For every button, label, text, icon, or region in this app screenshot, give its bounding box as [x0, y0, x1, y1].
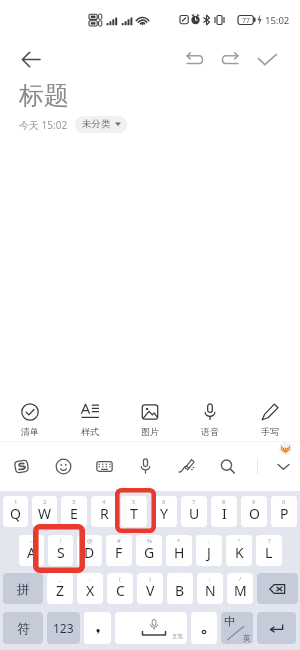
- staticText: E: [70, 504, 78, 523]
- staticText: 2: [43, 498, 47, 506]
- button[interactable]: Back: [14, 42, 48, 76]
- staticText: %: [147, 537, 152, 545]
- staticText: K: [235, 543, 244, 562]
- button[interactable]: 9: [241, 496, 267, 527]
- staticText: (: [119, 575, 121, 583]
- button[interactable]: 拼: [3, 573, 43, 604]
- staticText: 五笔: [172, 633, 183, 640]
- staticText: Y: [160, 504, 168, 523]
- staticText: X: [86, 581, 95, 600]
- button[interactable]: 图片: [120, 397, 180, 441]
- staticText: ~: [30, 537, 34, 545]
- button[interactable]: Emoji: [42, 442, 84, 491]
- staticText: C: [116, 581, 125, 600]
- button[interactable]: 6: [151, 496, 177, 527]
- staticText: 标题: [19, 80, 69, 111]
- button[interactable]: 语音: [180, 397, 240, 441]
- staticText: T: [130, 504, 138, 523]
- staticText: 1: [14, 498, 18, 506]
- button[interactable]: @: [77, 535, 102, 566]
- staticText: 拼: [17, 581, 30, 597]
- button[interactable]: Redo: [212, 42, 248, 76]
- button[interactable]: /: [227, 573, 253, 604]
- button[interactable]: Search: [207, 442, 248, 491]
- button[interactable]: 3: [61, 496, 87, 527]
- staticText: /: [239, 575, 242, 583]
- staticText: W: [38, 504, 52, 523]
- button[interactable]: ”: [226, 535, 252, 566]
- button[interactable]: -: [77, 573, 103, 604]
- button[interactable]: ): [137, 573, 163, 604]
- staticText: 语音: [201, 426, 219, 437]
- staticText: 15:02: [265, 14, 290, 27]
- button[interactable]: Chinese English toggle: [221, 612, 253, 644]
- button[interactable]: ~: [19, 535, 44, 566]
- staticText: 9: [252, 498, 256, 506]
- button[interactable]: !: [48, 535, 73, 566]
- staticText: 清单: [21, 426, 39, 437]
- button[interactable]: 2: [32, 496, 57, 527]
- staticText: 未分类: [82, 118, 111, 130]
- staticText: @: [87, 537, 93, 545]
- staticText: ;: [209, 575, 211, 583]
- staticText: 3: [72, 498, 76, 506]
- button[interactable]: _: [47, 573, 73, 604]
- button[interactable]: Period: [191, 612, 217, 644]
- button[interactable]: #: [106, 535, 132, 566]
- staticText: 符: [17, 620, 30, 636]
- button[interactable]: Space: [115, 612, 187, 644]
- staticText: ”: [238, 537, 241, 545]
- button[interactable]: *: [166, 535, 192, 566]
- button[interactable]: 8: [211, 496, 237, 527]
- button[interactable]: Backspace: [257, 573, 298, 604]
- button[interactable]: 0: [271, 496, 297, 527]
- staticText: U: [189, 504, 200, 523]
- staticText: J: [207, 543, 211, 562]
- staticText: :: [208, 537, 210, 545]
- staticText: O: [249, 504, 260, 523]
- staticText: ): [149, 575, 151, 583]
- staticText: -: [89, 575, 91, 583]
- staticText: 今天 15:02: [19, 118, 68, 132]
- button[interactable]: Handwriting: [166, 442, 207, 491]
- staticText: 样式: [81, 426, 99, 437]
- button[interactable]: 、: [167, 573, 193, 604]
- button[interactable]: Keyboard layout: [84, 442, 125, 491]
- staticText: 5: [132, 498, 136, 506]
- staticText: 、: [177, 575, 183, 583]
- button[interactable]: 清单: [0, 397, 60, 441]
- button[interactable]: Voice input: [125, 442, 166, 491]
- staticText: L: [265, 543, 273, 562]
- button[interactable]: 7: [181, 496, 207, 527]
- button[interactable]: (: [107, 573, 133, 604]
- button[interactable]: 5: [121, 496, 147, 527]
- staticText: Z: [56, 581, 65, 600]
- button[interactable]: Hide keyboard: [266, 442, 300, 491]
- button[interactable]: ?: [256, 535, 282, 566]
- staticText: *: [177, 537, 181, 545]
- button[interactable]: 未分类: [75, 116, 127, 133]
- button[interactable]: 符: [3, 612, 43, 644]
- staticText: A: [27, 543, 36, 562]
- staticText: 77: [242, 16, 251, 26]
- staticText: N: [205, 581, 216, 600]
- button[interactable]: Done: [249, 42, 285, 76]
- button[interactable]: 1: [3, 496, 28, 527]
- button[interactable]: :: [196, 535, 222, 566]
- button[interactable]: 手写: [240, 397, 300, 441]
- button[interactable]: ;: [197, 573, 223, 604]
- button[interactable]: 样式: [60, 397, 120, 441]
- staticText: 6: [162, 498, 166, 506]
- button[interactable]: Comma: [84, 612, 111, 644]
- button[interactable]: Sogou input: [0, 442, 42, 491]
- staticText: 手写: [261, 426, 279, 437]
- button[interactable]: 4: [91, 496, 117, 527]
- button[interactable]: 123: [47, 612, 80, 644]
- staticText: 0: [282, 498, 286, 506]
- button[interactable]: Undo: [177, 42, 213, 76]
- staticText: P: [280, 504, 289, 523]
- button[interactable]: Enter: [257, 612, 296, 644]
- staticText: 7: [192, 498, 196, 506]
- staticText: S: [57, 543, 65, 562]
- button[interactable]: %: [136, 535, 162, 566]
